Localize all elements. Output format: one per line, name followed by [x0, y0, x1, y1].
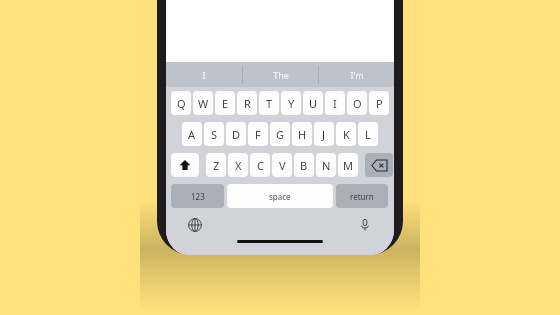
button[interactable]: W [193, 91, 213, 115]
button[interactable]: V [272, 153, 292, 177]
staticText: P [376, 96, 383, 111]
staticText: I [202, 69, 206, 81]
staticText: I [333, 96, 337, 111]
button[interactable]: 123 [171, 184, 224, 208]
button[interactable]: B [294, 153, 314, 177]
button[interactable]: Switch keyboard language [184, 214, 206, 236]
staticText: L [365, 127, 371, 142]
button[interactable]: L [358, 122, 378, 146]
staticText: V [279, 158, 286, 173]
button[interactable]: Q [171, 91, 191, 115]
staticText: X [235, 158, 242, 173]
button[interactable]: J [314, 122, 334, 146]
staticText: B [300, 158, 308, 173]
button[interactable]: X [228, 153, 248, 177]
button[interactable]: Z [206, 153, 226, 177]
button[interactable]: M [338, 153, 358, 177]
button[interactable]: I [325, 91, 345, 115]
button[interactable]: G [270, 122, 290, 146]
button[interactable]: H [292, 122, 312, 146]
staticText: E [222, 96, 229, 111]
staticText: I'm [350, 69, 364, 81]
button[interactable]: S [204, 122, 224, 146]
button[interactable]: The [243, 62, 318, 87]
button[interactable]: Y [281, 91, 301, 115]
staticText: F [255, 127, 261, 142]
staticText: Q [177, 96, 186, 111]
button[interactable]: C [250, 153, 270, 177]
staticText: N [322, 158, 331, 173]
staticText: J [322, 127, 326, 142]
staticText: A [188, 127, 196, 142]
button[interactable]: Dictation [354, 214, 376, 236]
button[interactable]: U [303, 91, 323, 115]
staticText: Y [288, 96, 295, 111]
staticText: C [257, 158, 264, 173]
button[interactable]: O [347, 91, 367, 115]
button[interactable]: F [248, 122, 268, 146]
staticText: G [276, 127, 285, 142]
staticText: D [232, 127, 241, 142]
staticText: U [309, 96, 318, 111]
button[interactable]: space [227, 184, 333, 208]
staticText: space [269, 191, 291, 202]
staticText: W [198, 96, 209, 111]
button[interactable]: K [336, 122, 356, 146]
staticText: return [350, 191, 374, 202]
button[interactable]: A [182, 122, 202, 146]
button[interactable]: P [369, 91, 389, 115]
button[interactable]: R [237, 91, 257, 115]
button[interactable]: I'm [319, 62, 394, 87]
staticText: The [273, 69, 289, 81]
button[interactable]: T [259, 91, 279, 115]
staticText: 123 [191, 191, 205, 202]
staticText: T [266, 96, 273, 111]
button[interactable]: N [316, 153, 336, 177]
staticText: H [298, 127, 307, 142]
button[interactable]: Backspace [365, 153, 393, 177]
button[interactable]: Shift [171, 153, 199, 177]
staticText: R [244, 96, 251, 111]
staticText: S [211, 127, 218, 142]
staticText: O [353, 96, 362, 111]
button[interactable]: E [215, 91, 235, 115]
staticText: K [343, 127, 350, 142]
button[interactable]: return [336, 184, 388, 208]
staticText: Z [213, 158, 220, 173]
button[interactable]: D [226, 122, 246, 146]
button[interactable]: I [166, 62, 242, 87]
staticText: M [343, 158, 353, 173]
